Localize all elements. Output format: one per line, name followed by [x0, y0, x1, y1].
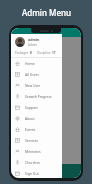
staticText: New User [25, 83, 41, 88]
staticText: About [25, 116, 35, 121]
button[interactable]: Churches [11, 157, 62, 168]
staticText: Sign Out [25, 171, 39, 176]
button[interactable]: Services [11, 135, 62, 146]
button[interactable]: Support [11, 102, 62, 113]
staticText: Events [25, 127, 36, 132]
staticText: All Users [25, 72, 39, 77]
staticText: Packages [15, 51, 29, 55]
button[interactable]: Packages [15, 51, 32, 55]
staticText: Admin Menu [22, 7, 71, 18]
staticText: 8 [30, 51, 32, 55]
staticText: Home [25, 61, 35, 66]
button[interactable]: About [11, 113, 62, 124]
button[interactable]: Sign Out [11, 168, 62, 178]
button[interactable]: Ministries [11, 146, 62, 157]
button[interactable]: Events [11, 124, 62, 135]
staticText: Ministries [25, 149, 41, 154]
staticText: Churches [25, 160, 40, 165]
staticText: Growth Progress [25, 94, 52, 99]
button[interactable]: Growth Progress [11, 91, 62, 102]
staticText: 17 [52, 51, 56, 55]
button[interactable]: Home [11, 58, 62, 69]
button[interactable]: admin [11, 34, 62, 49]
staticText: admin [28, 37, 40, 42]
staticText: Services [25, 138, 38, 143]
button[interactable]: All Users [11, 69, 62, 80]
button[interactable]: Discipline [37, 51, 56, 55]
staticText: Admin [28, 43, 38, 47]
staticText: Support [25, 105, 38, 110]
staticText: Discipline [37, 51, 51, 55]
button[interactable]: New User [11, 80, 62, 91]
